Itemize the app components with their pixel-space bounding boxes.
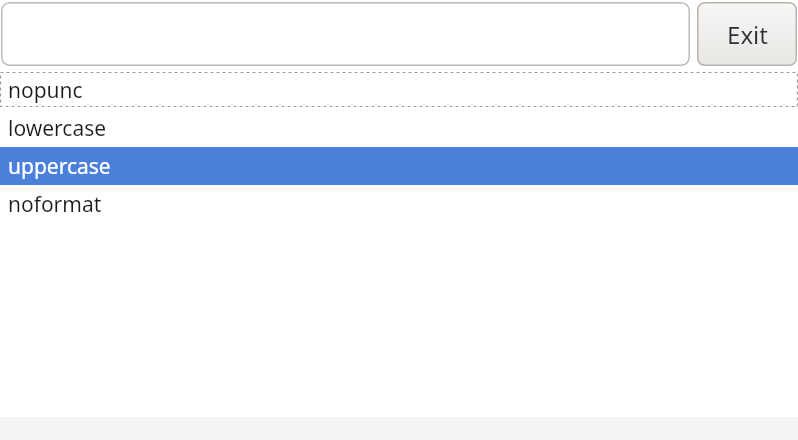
button[interactable]: lowercase (0, 109, 798, 147)
button[interactable]: uppercase (0, 147, 798, 185)
staticText: lowercase (8, 114, 107, 143)
staticText: nopunc (8, 76, 83, 105)
staticText: uppercase (8, 152, 111, 181)
staticText: Exit (727, 18, 768, 51)
button[interactable] (1, 2, 690, 66)
button[interactable]: noformat (0, 185, 798, 223)
button[interactable]: nopunc (0, 71, 798, 109)
button[interactable]: Exit (697, 2, 797, 66)
staticText: noformat (8, 190, 102, 219)
